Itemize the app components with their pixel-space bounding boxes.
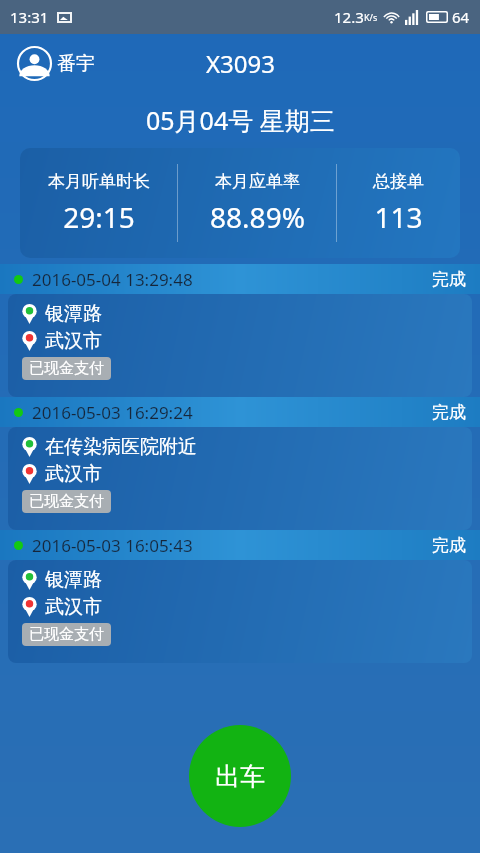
staticText: 武汉市 [45, 462, 102, 486]
staticText: K/s [364, 11, 378, 23]
staticText: 113 [374, 198, 423, 236]
button[interactable]: 2016-05-03 16:29:24 [0, 397, 480, 530]
staticText: 出车 [215, 761, 265, 792]
staticText: 武汉市 [45, 595, 102, 619]
staticText: 2016-05-04 13:29:48 [32, 268, 193, 291]
button[interactable]: Profile [18, 47, 95, 80]
staticText: 88.89% [210, 198, 305, 236]
staticText: 完成 [432, 535, 466, 556]
staticText: 2016-05-03 16:29:24 [32, 401, 193, 424]
staticText: 武汉市 [45, 329, 102, 353]
staticText: 完成 [432, 402, 466, 423]
staticText: 番宇 [57, 52, 95, 76]
staticText: 29:15 [63, 198, 135, 236]
staticText: 本月听单时长 [48, 171, 150, 192]
staticText: 本月应单率 [215, 171, 300, 192]
staticText: 05月04号 星期三 [146, 103, 335, 137]
staticText: 2016-05-03 16:05:43 [32, 534, 193, 557]
staticText: 在传染病医院附近 [45, 435, 197, 459]
staticText: 总接单 [373, 171, 424, 192]
button[interactable]: 本月听单时长 [20, 148, 460, 258]
staticText: X3093 [206, 47, 275, 80]
staticText: 银潭路 [45, 302, 102, 326]
staticText: 完成 [432, 269, 466, 290]
staticText: 12.3 [334, 7, 364, 27]
button[interactable]: 出车 [189, 725, 291, 827]
staticText: 已现金支付 [29, 492, 104, 511]
other: Profile [18, 47, 51, 80]
staticText: 64 [452, 7, 470, 27]
button[interactable]: 2016-05-04 13:29:48 [0, 264, 480, 397]
staticText: 已现金支付 [29, 625, 104, 644]
button[interactable]: 2016-05-03 16:05:43 [0, 530, 480, 663]
staticText: 13:31 [10, 7, 49, 27]
staticText: 银潭路 [45, 568, 102, 592]
staticText: 已现金支付 [29, 359, 104, 378]
